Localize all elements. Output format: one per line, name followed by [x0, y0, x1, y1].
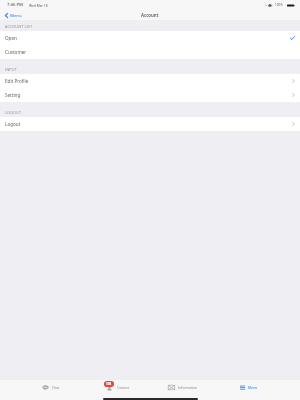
staticText: Menu — [248, 385, 258, 390]
staticText: Setting — [5, 92, 21, 98]
staticText: Contact — [117, 385, 130, 390]
staticText: Logout — [5, 121, 21, 127]
button[interactable]: Information — [150, 380, 216, 395]
staticText: Open — [5, 35, 17, 41]
staticText: Information — [178, 385, 198, 390]
staticText: Account — [141, 12, 159, 18]
staticText: ACCOUNT LIST — [5, 24, 33, 29]
button[interactable]: Menu — [216, 380, 282, 395]
staticText: Edit Profile — [5, 78, 29, 84]
button[interactable]: Setting — [0, 88, 300, 102]
button[interactable]: Edit Profile — [0, 74, 300, 88]
staticText: LOGOUT — [5, 110, 22, 115]
button[interactable]: Logout — [0, 117, 300, 131]
staticText: 105 — [106, 382, 112, 386]
staticText: 7:46 PM — [7, 2, 23, 8]
staticText: 100% — [275, 3, 283, 7]
button[interactable]: Menu — [0, 11, 25, 19]
staticText: INPUT — [5, 67, 17, 72]
button[interactable]: Chat — [18, 380, 84, 395]
button[interactable]: Open — [0, 31, 300, 45]
staticText: Wed Mar 18 — [29, 3, 48, 7]
button[interactable]: 105 — [84, 380, 150, 395]
staticText: Menu — [10, 12, 22, 18]
staticText: Customer — [5, 49, 27, 55]
staticText: Chat — [52, 385, 60, 390]
button[interactable]: Customer — [0, 45, 300, 59]
